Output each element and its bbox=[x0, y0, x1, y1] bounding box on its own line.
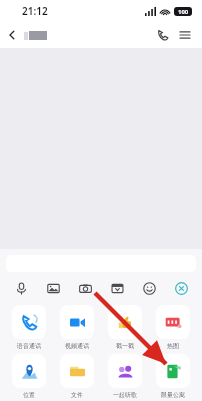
button[interactable]: Emoji bbox=[138, 277, 160, 299]
button[interactable]: Close bbox=[170, 277, 192, 299]
button[interactable]: Files bbox=[106, 277, 128, 299]
staticText: 语音通话 bbox=[17, 342, 41, 350]
button[interactable]: 文件 bbox=[58, 354, 96, 399]
staticText: 位置 bbox=[23, 391, 35, 399]
button[interactable]: Menu bbox=[174, 24, 196, 46]
button[interactable]: Camera bbox=[74, 277, 96, 299]
staticText: 一起听歌 bbox=[113, 391, 137, 399]
staticText: 热图 bbox=[167, 342, 179, 350]
staticText: 戳一戳 bbox=[116, 342, 134, 350]
button[interactable]: 一起听歌 bbox=[106, 354, 144, 399]
button[interactable]: 位置 bbox=[10, 354, 48, 399]
staticText: 视频通话 bbox=[65, 342, 89, 350]
staticText: 文件 bbox=[71, 391, 83, 399]
button[interactable]: Photos bbox=[42, 277, 64, 299]
button[interactable]: 限量公寓 bbox=[154, 354, 192, 399]
staticText: 21:12 bbox=[22, 4, 48, 18]
button[interactable]: 语音通话 bbox=[10, 305, 48, 350]
button[interactable]: 戳一戳 bbox=[106, 305, 144, 350]
button[interactable]: Call bbox=[152, 24, 174, 46]
button[interactable]: 热图 bbox=[154, 305, 192, 350]
button[interactable]: Back bbox=[0, 23, 24, 47]
button[interactable]: 视频通话 bbox=[58, 305, 96, 350]
staticText: 100 bbox=[178, 8, 189, 16]
staticText: 限量公寓 bbox=[161, 391, 185, 399]
button[interactable]: Voice input bbox=[10, 277, 32, 299]
